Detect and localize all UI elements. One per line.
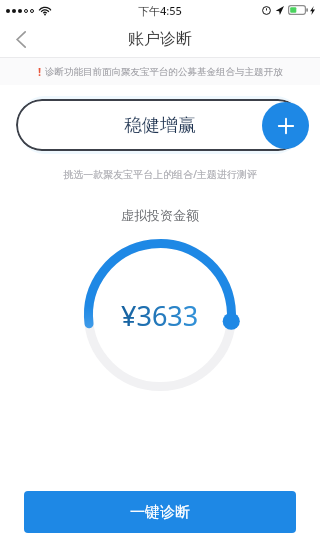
staticText: 账户诊断 xyxy=(128,29,192,49)
staticText: ¥3633 xyxy=(121,297,199,334)
button[interactable]: Add portfolio xyxy=(262,102,309,149)
staticText: 诊断功能目前面向聚友宝平台的公募基金组合与主题开放 xyxy=(45,66,283,78)
staticText: 下午4:55 xyxy=(138,3,182,18)
staticText: 一键诊断 xyxy=(130,503,190,522)
button[interactable]: Back xyxy=(0,20,42,58)
staticText: 虚拟投资金额 xyxy=(0,207,320,223)
staticText: ! xyxy=(38,64,42,79)
button[interactable]: 一键诊断 xyxy=(24,491,296,533)
button[interactable]: 稳健增赢 xyxy=(16,99,304,151)
staticText: 挑选一款聚友宝平台上的组合/主题进行测评 xyxy=(0,167,320,181)
staticText: 稳健增赢 xyxy=(124,114,196,137)
